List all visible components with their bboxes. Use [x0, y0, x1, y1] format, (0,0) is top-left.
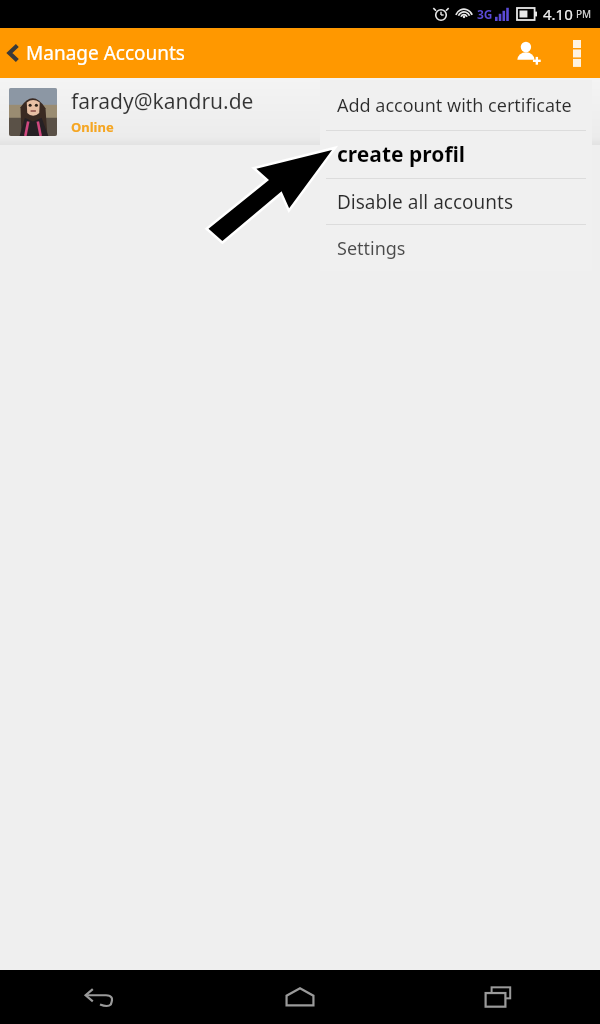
button[interactable]: Add account: [502, 28, 554, 78]
button[interactable]: Back: [55, 970, 145, 1024]
staticText: Manage Accounts: [26, 40, 185, 66]
staticText: Settings: [337, 236, 406, 261]
staticText: create profil: [337, 140, 466, 169]
button[interactable]: Manage Accounts: [0, 34, 193, 72]
button[interactable]: Settings: [320, 225, 592, 271]
staticText: Online: [71, 118, 114, 136]
staticText: 4.10: [543, 4, 573, 24]
button[interactable]: More options: [554, 30, 600, 76]
staticText: 3G: [477, 6, 493, 22]
button[interactable]: Recent apps: [455, 970, 545, 1024]
staticText: PM: [576, 7, 592, 21]
staticText: Disable all accounts: [337, 189, 514, 215]
button[interactable]: Add account with certificate: [320, 80, 592, 130]
button[interactable]: create profil: [320, 131, 592, 178]
button[interactable]: Home: [255, 970, 345, 1024]
button[interactable]: Disable all accounts: [320, 179, 592, 224]
button[interactable]: farady@kandru.de: [0, 78, 600, 145]
staticText: farady@kandru.de: [71, 87, 254, 116]
staticText: Add account with certificate: [337, 93, 572, 118]
